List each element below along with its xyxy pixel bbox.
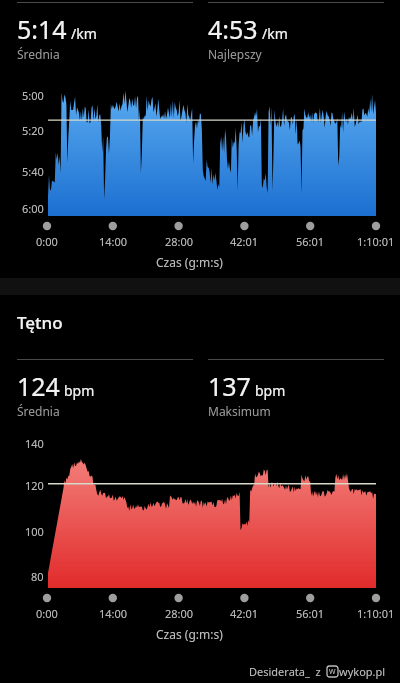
staticText: Maksimum [208,403,271,419]
staticText: 124 [17,369,60,403]
staticText: /km [262,24,288,43]
staticText: 80 [31,569,44,584]
button[interactable]: 124 [17,359,193,419]
staticText: 0:00 [36,606,58,621]
staticText: Średnia [17,403,60,419]
button[interactable]: 4:53 [208,2,384,62]
staticText: 120 [25,478,44,493]
button[interactable]: 137 [208,359,384,419]
staticText: 14:00 [99,606,128,621]
staticText: 1:10:01 [357,234,395,249]
staticText: 5:00 [22,88,44,103]
staticText: 28:00 [165,234,194,249]
staticText: 6:00 [22,201,44,216]
button[interactable]: 5:14 [17,2,193,62]
staticText: 28:00 [165,606,194,621]
staticText: Desiderata_ z [249,664,327,679]
staticText: Tętno [17,311,63,334]
staticText: 0:00 [36,234,58,249]
staticText: bpm [255,381,286,400]
staticText: 1:10:01 [357,606,395,621]
staticText: Najlepszy [208,46,262,62]
staticText: bpm [64,381,95,400]
staticText: wykop.pl [339,664,386,679]
staticText: 14:00 [99,234,128,249]
staticText: 42:01 [230,234,259,249]
staticText: 42:01 [230,606,259,621]
staticText: 137 [208,369,251,403]
staticText: 5:20 [22,123,44,138]
staticText: Czas (g:m:s) [156,626,223,642]
staticText: 4:53 [208,12,258,46]
staticText: 5:14 [17,12,67,46]
other: wykop logo [327,666,338,677]
staticText: 5:40 [22,164,44,179]
staticText: 56:01 [296,606,325,621]
staticText: Średnia [17,46,60,62]
staticText: W [329,667,336,677]
staticText: Czas (g:m:s) [156,254,223,270]
staticText: 56:01 [296,234,325,249]
staticText: 100 [25,524,44,539]
staticText: /km [71,24,97,43]
staticText: 140 [25,436,44,451]
